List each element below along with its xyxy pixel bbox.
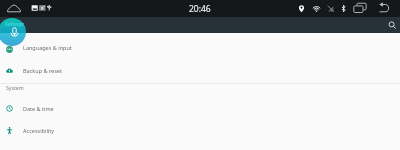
button[interactable]: Voice search (0, 18, 26, 46)
button[interactable]: Backup & reset (0, 60, 400, 81)
button[interactable]: Home (6, 1, 22, 17)
staticText: Accessibility (23, 127, 55, 134)
button[interactable]: Accessibility (0, 120, 400, 141)
staticText: Settings (5, 21, 24, 28)
button[interactable]: Date & time (0, 98, 400, 119)
staticText: Languages & input (23, 44, 72, 51)
button[interactable]: Recents (353, 2, 367, 16)
staticText: Date & time (23, 105, 54, 112)
staticText: System (6, 84, 24, 91)
staticText: 20:46 (189, 3, 211, 15)
button[interactable]: Search (385, 18, 399, 32)
button[interactable]: Back (377, 1, 392, 16)
button[interactable]: Languages & input (0, 37, 400, 58)
staticText: Backup & reset (23, 67, 62, 74)
